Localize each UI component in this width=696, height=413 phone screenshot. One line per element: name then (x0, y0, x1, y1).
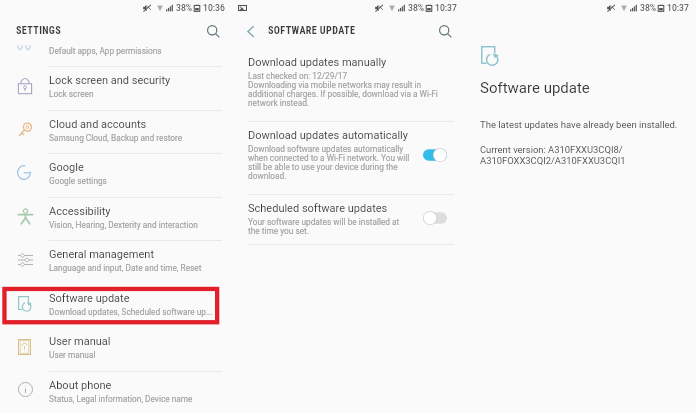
button[interactable]: User manual (0, 327, 232, 371)
button[interactable]: General management (0, 240, 232, 284)
staticText: Download software updates automatically … (248, 144, 410, 181)
button[interactable]: About phone (0, 371, 232, 413)
staticText: SETTINGS (16, 25, 62, 37)
staticText: Status, Legal information, Device name (49, 394, 193, 404)
staticText: Google (49, 161, 84, 174)
button[interactable]: Search (434, 20, 456, 42)
staticText: Lock screen and security (49, 74, 171, 87)
staticText: Last checked on: 12/29/17 Downloading vi… (248, 71, 438, 108)
button[interactable]: Scheduled software updates (232, 198, 464, 242)
staticText: Download updates manually (248, 56, 387, 69)
staticText: Your software updates will be installed … (248, 217, 400, 236)
staticText: 38% (176, 3, 193, 13)
staticText: Vision, Hearing, Dexterity and interacti… (49, 220, 198, 230)
staticText: Software update (480, 79, 590, 97)
staticText: Scheduled software updates (248, 202, 388, 215)
button[interactable]: Back (240, 21, 260, 41)
staticText: Download updates, Scheduled software up.… (49, 307, 213, 317)
staticText: 38% (640, 3, 657, 13)
staticText: SOFTWARE UPDATE (268, 25, 356, 37)
button[interactable]: Turn off (423, 148, 447, 162)
staticText: Download updates automatically (248, 129, 408, 142)
staticText: Lock screen (49, 89, 94, 99)
staticText: About phone (49, 379, 112, 392)
staticText: Default apps, App permissions (49, 46, 162, 56)
staticText: Cloud and accounts (49, 118, 147, 131)
staticText: Current version: A310FXXU3CQI8/ A310FOXX… (480, 144, 626, 166)
button[interactable]: Software update (0, 284, 232, 328)
staticText: 38% (408, 3, 425, 13)
button[interactable]: Accessibility (0, 197, 232, 241)
button[interactable]: Download updates manually (232, 50, 464, 118)
staticText: The latest updates have already been ins… (480, 119, 678, 130)
button[interactable]: Turn on (423, 211, 447, 225)
button[interactable]: Download updates automatically (232, 124, 464, 192)
button[interactable]: Cloud and accounts (0, 110, 232, 154)
staticText: Accessibility (49, 205, 111, 218)
staticText: 10:36 (203, 3, 225, 13)
staticText: 10:37 (435, 3, 457, 13)
button[interactable]: Search (202, 20, 224, 42)
staticText: General management (49, 248, 154, 261)
staticText: User manual (49, 350, 96, 360)
staticText: Language and input, Date and time, Reset (49, 263, 202, 273)
staticText: User manual (49, 335, 111, 348)
staticText: Google settings (49, 176, 107, 186)
button[interactable]: SETTINGS (0, 16, 232, 45)
button[interactable]: Google (0, 153, 232, 197)
button[interactable]: Lock screen and security (0, 66, 232, 110)
staticText: Software update (49, 292, 130, 305)
staticText: Samsung Cloud, Backup and restore (49, 133, 183, 143)
staticText: 10:37 (667, 3, 689, 13)
